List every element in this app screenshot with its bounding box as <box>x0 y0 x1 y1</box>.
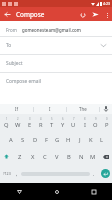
staticText: C <box>43 153 47 161</box>
staticText: U <box>71 121 76 129</box>
staticText: From <box>6 27 17 33</box>
button[interactable]: S <box>17 131 29 148</box>
staticText: Subject <box>6 60 23 67</box>
staticText: 4 <box>40 117 42 121</box>
staticText: The <box>79 106 87 112</box>
staticText: 6 <box>62 117 64 121</box>
staticText: G <box>55 136 60 144</box>
staticText: A <box>9 136 13 144</box>
staticText: E <box>28 121 32 129</box>
button[interactable]: 2 <box>12 114 24 131</box>
button[interactable]: H <box>63 131 74 148</box>
staticText: . <box>93 170 95 177</box>
button[interactable]: Voice input <box>100 104 112 114</box>
button[interactable]: Back <box>0 183 38 200</box>
staticText: gomeonesteam@gmail.com <box>22 27 81 33</box>
button[interactable]: 9 <box>90 114 101 131</box>
button[interactable]: 1 <box>0 114 12 131</box>
button[interactable]: X <box>26 148 39 165</box>
button[interactable]: Back <box>0 7 14 21</box>
button[interactable]: Compose email <box>0 73 112 104</box>
staticText: 9 <box>95 117 97 121</box>
button[interactable]: C <box>39 148 51 165</box>
button[interactable]: D <box>29 131 41 148</box>
button[interactable]: 4 <box>35 114 46 131</box>
staticText: 7 <box>73 117 75 121</box>
staticText: 2 <box>17 117 19 121</box>
staticText: F <box>45 136 49 144</box>
button[interactable]: N <box>75 148 87 165</box>
staticText: I <box>84 121 86 129</box>
staticText: B <box>67 153 71 161</box>
button[interactable]: 0 <box>101 114 112 131</box>
button[interactable]: More options <box>102 10 112 20</box>
staticText: 1 <box>6 117 8 121</box>
staticText: J <box>79 136 81 144</box>
button[interactable]: G <box>52 131 63 148</box>
staticText: L <box>100 136 104 144</box>
button[interactable]: ?123 <box>0 165 13 182</box>
button[interactable]: B <box>63 148 75 165</box>
button[interactable]: Recent apps <box>75 183 112 200</box>
staticText: S <box>21 136 25 144</box>
staticText: Compose <box>16 10 45 19</box>
staticText: If <box>15 106 18 112</box>
button[interactable]: To <box>0 37 112 54</box>
button[interactable]: , <box>13 165 21 182</box>
staticText: T <box>50 121 54 129</box>
button[interactable]: Send <box>89 8 102 21</box>
button[interactable]: Attach file <box>76 8 89 21</box>
staticText: O <box>93 121 98 129</box>
button[interactable]: Subject <box>0 55 112 72</box>
button[interactable]: Space <box>21 169 90 178</box>
staticText: M <box>90 153 96 161</box>
staticText: ?123 <box>3 171 11 176</box>
staticText: , <box>16 170 18 177</box>
button[interactable]: Home <box>38 183 75 200</box>
staticText: Q <box>4 121 9 129</box>
staticText: 3 <box>29 117 31 121</box>
staticText: Compose email <box>6 78 41 85</box>
staticText: X <box>31 153 35 161</box>
staticText: 0 <box>106 117 108 121</box>
button[interactable]: Backspace <box>99 148 112 165</box>
staticText: P <box>105 121 109 129</box>
button[interactable]: K <box>85 131 96 148</box>
staticText: Z <box>18 153 22 161</box>
button[interactable]: 3 <box>24 114 35 131</box>
button[interactable]: F <box>41 131 52 148</box>
staticText: To <box>6 42 12 49</box>
staticText: R <box>39 121 43 129</box>
button[interactable]: 5 <box>46 114 57 131</box>
button[interactable]: 6 <box>57 114 68 131</box>
button[interactable]: If <box>0 104 33 114</box>
button[interactable]: M <box>87 148 99 165</box>
staticText: 4:23 <box>103 1 111 6</box>
staticText: 5 <box>51 117 53 121</box>
button[interactable]: Shift <box>0 148 13 165</box>
staticText: I <box>49 106 51 112</box>
button[interactable]: 8 <box>79 114 90 131</box>
button[interactable]: A <box>5 131 17 148</box>
button[interactable]: . <box>90 165 98 182</box>
staticText: D <box>33 136 38 144</box>
staticText: V <box>55 153 59 161</box>
button[interactable]: I <box>34 104 66 114</box>
staticText: N <box>79 153 84 161</box>
button[interactable]: Enter <box>98 165 112 182</box>
button[interactable]: V <box>51 148 63 165</box>
button[interactable]: 7 <box>68 114 79 131</box>
button[interactable]: Z <box>13 148 26 165</box>
staticText: H <box>66 136 71 144</box>
button[interactable]: J <box>74 131 85 148</box>
staticText: W <box>15 121 21 129</box>
staticText: Y <box>61 121 65 129</box>
button[interactable]: The <box>67 104 99 114</box>
button[interactable]: From <box>0 23 112 36</box>
button[interactable]: L <box>96 131 107 148</box>
staticText: 8 <box>84 117 86 121</box>
staticText: K <box>89 136 93 144</box>
